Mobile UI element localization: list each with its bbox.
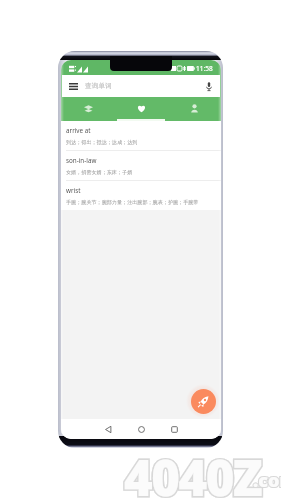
staticText: 4040Z — [124, 444, 262, 500]
staticText: son-in-law — [66, 156, 97, 165]
button[interactable]: Menu — [62, 75, 220, 97]
staticText: arrive at — [66, 126, 91, 135]
button[interactable]: Home — [133, 421, 149, 437]
button[interactable]: wrist — [61, 181, 221, 210]
staticText: 女婿，招赘女婿；东床；子婿 — [66, 169, 133, 175]
button[interactable]: Recents — [166, 421, 182, 437]
staticText: wrist — [66, 186, 81, 195]
button[interactable]: Start study — [191, 389, 216, 414]
button[interactable]: arrive at — [61, 121, 221, 150]
button[interactable]: Menu — [66, 79, 80, 93]
button[interactable]: Voice search — [202, 79, 216, 93]
staticText: 11:58 — [196, 64, 213, 73]
staticText: 查询单词 — [85, 82, 112, 90]
button[interactable]: Favorites — [115, 97, 168, 121]
staticText: .com — [253, 468, 281, 493]
staticText: 4040Z — [124, 444, 262, 500]
button[interactable]: Dictionary — [61, 97, 115, 121]
button[interactable]: Back — [100, 421, 116, 437]
staticText: 到达；得出；抵达；达成；达到 — [66, 139, 138, 145]
button[interactable]: son-in-law — [61, 151, 221, 180]
staticText: 手腕；腕关节；腕部力量；注出腕部；腕表；护腕；手腕带 — [66, 199, 199, 205]
button[interactable]: Profile — [168, 97, 221, 121]
staticText: .com — [253, 468, 281, 493]
